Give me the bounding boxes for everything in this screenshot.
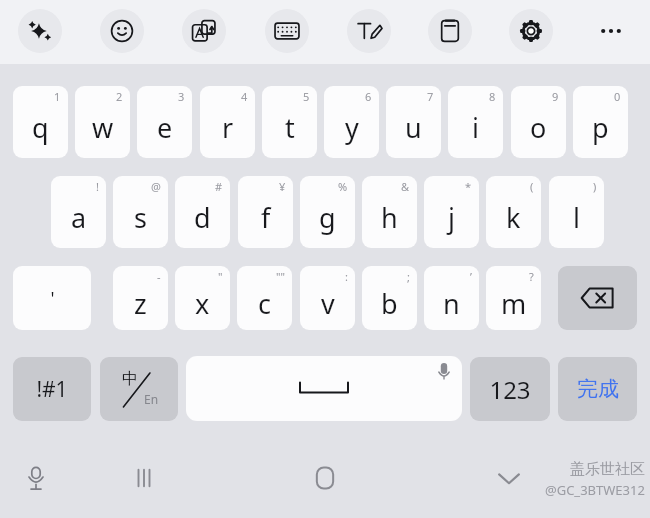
staticText: q — [32, 109, 49, 146]
staticText: ' — [50, 286, 55, 311]
staticText: 7 — [427, 89, 434, 104]
button[interactable]: 8 — [448, 86, 503, 158]
button[interactable]: ; — [362, 266, 417, 330]
button[interactable]: 1 — [13, 86, 68, 158]
staticText: f — [261, 199, 271, 236]
staticText: p — [592, 109, 609, 146]
button[interactable]: @ — [113, 176, 168, 248]
staticText: ! — [96, 179, 99, 194]
staticText: : — [345, 269, 348, 284]
staticText: y — [345, 109, 359, 146]
button[interactable]: ' — [13, 266, 91, 330]
button[interactable]: ’ — [424, 266, 479, 330]
button[interactable]: !#1 — [13, 357, 91, 421]
staticText: 2 — [116, 89, 123, 104]
button[interactable]: 2 — [75, 86, 130, 158]
staticText: r — [222, 109, 234, 146]
button[interactable]: Settings — [509, 9, 553, 53]
button[interactable]: 9 — [511, 86, 566, 158]
button[interactable]: 123 — [470, 357, 550, 421]
staticText: x — [195, 285, 210, 322]
staticText: - — [157, 269, 161, 284]
button[interactable]: Recent apps — [118, 452, 170, 504]
staticText: 6 — [365, 89, 372, 104]
button[interactable]: Hide keyboard — [483, 452, 535, 504]
staticText: u — [405, 109, 422, 146]
staticText: !#1 — [36, 375, 68, 404]
staticText: d — [194, 199, 211, 236]
button[interactable]: Voice input — [10, 452, 62, 504]
staticText: "" — [276, 269, 285, 284]
staticText: ¥ — [279, 179, 286, 194]
staticText: a — [71, 199, 87, 236]
button[interactable]: 5 — [262, 86, 317, 158]
button[interactable]: ) — [549, 176, 604, 248]
button[interactable]: : — [300, 266, 355, 330]
staticText: i — [472, 109, 479, 146]
staticText: % — [338, 179, 348, 194]
button[interactable]: ( — [486, 176, 541, 248]
staticText: l — [573, 199, 580, 236]
button[interactable]: More options — [589, 9, 633, 53]
button[interactable]: 7 — [386, 86, 441, 158]
button[interactable]: % — [300, 176, 355, 248]
staticText: * — [465, 179, 472, 194]
staticText: @GC_3BTWE312 — [545, 481, 645, 499]
staticText: 1 — [54, 89, 61, 104]
staticText: 5 — [303, 89, 310, 104]
staticText: k — [506, 199, 521, 236]
staticText: s — [134, 199, 147, 236]
button[interactable]: # — [175, 176, 230, 248]
button[interactable]: Clipboard — [428, 9, 472, 53]
staticText: # — [215, 179, 223, 194]
button[interactable]: AI suggestions — [18, 9, 62, 53]
staticText: 0 — [614, 89, 621, 104]
button[interactable]: & — [362, 176, 417, 248]
staticText: 完成 — [577, 376, 619, 402]
staticText: & — [401, 179, 410, 194]
staticText: En — [144, 391, 159, 407]
staticText: w — [92, 109, 114, 146]
staticText: 8 — [489, 89, 496, 104]
staticText: ; — [407, 269, 410, 284]
staticText: 盖乐世社区 — [570, 460, 645, 479]
staticText: v — [321, 285, 335, 322]
staticText: e — [157, 109, 173, 146]
button[interactable]: Handwriting — [347, 9, 391, 53]
button[interactable]: 0 — [573, 86, 628, 158]
button[interactable]: Space — [186, 356, 462, 421]
button[interactable]: Keyboard layout — [265, 9, 309, 53]
button[interactable]: Backspace — [558, 266, 637, 330]
button[interactable]: ? — [486, 266, 541, 330]
button[interactable]: * — [424, 176, 479, 248]
button[interactable]: - — [113, 266, 168, 330]
staticText: z — [134, 285, 147, 322]
staticText: ’ — [470, 269, 472, 284]
staticText: ( — [530, 179, 534, 194]
staticText: j — [448, 199, 455, 236]
staticText: " — [218, 269, 223, 284]
staticText: h — [381, 199, 398, 236]
staticText: o — [530, 109, 547, 146]
staticText: g — [319, 199, 336, 236]
staticText: ) — [593, 179, 597, 194]
button[interactable]: 3 — [137, 86, 192, 158]
button[interactable]: ! — [51, 176, 106, 248]
staticText: 4 — [241, 89, 248, 104]
staticText: @ — [151, 179, 161, 194]
button[interactable]: Emoji — [100, 9, 144, 53]
button[interactable]: 完成 — [558, 357, 637, 421]
staticText: b — [381, 285, 398, 322]
staticText: 中 — [122, 369, 138, 389]
staticText: 3 — [178, 89, 185, 104]
button[interactable]: 6 — [324, 86, 379, 158]
button[interactable]: ¥ — [238, 176, 293, 248]
staticText: ? — [529, 269, 534, 284]
button[interactable]: "" — [237, 266, 292, 330]
button[interactable]: Switch Chinese English — [100, 357, 178, 421]
button[interactable]: Home — [299, 452, 351, 504]
staticText: n — [443, 285, 460, 322]
button[interactable]: Translate — [182, 9, 226, 53]
button[interactable]: 4 — [200, 86, 255, 158]
button[interactable]: " — [175, 266, 230, 330]
